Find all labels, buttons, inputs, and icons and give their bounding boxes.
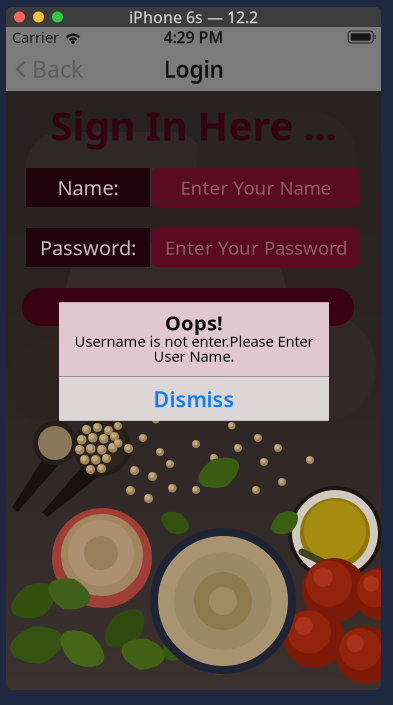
staticText: Back xyxy=(32,54,83,84)
staticText: User Name. xyxy=(153,346,234,366)
button[interactable]: Back xyxy=(6,46,93,92)
button[interactable]: Enter Your Name xyxy=(152,168,360,207)
staticText: 4:29 PM xyxy=(163,26,223,48)
staticText: Enter Your Name xyxy=(180,175,331,200)
staticText: Password: xyxy=(40,234,136,261)
staticText: Dismiss xyxy=(153,385,234,413)
staticText: Sign In Here ... xyxy=(50,98,336,151)
staticText: Enter Your Password xyxy=(165,235,347,260)
staticText: iPhone 6s — 12.2 xyxy=(129,6,258,28)
staticText: Login xyxy=(163,54,223,84)
staticText: Oops! xyxy=(165,309,223,336)
button[interactable]: Dismiss xyxy=(59,377,329,421)
button[interactable] xyxy=(22,288,354,326)
staticText: Carrier xyxy=(12,27,59,47)
button[interactable]: Enter Your Password xyxy=(152,228,360,267)
staticText: Username is not enter.Please Enter xyxy=(74,331,313,351)
staticText: Name: xyxy=(57,174,118,201)
